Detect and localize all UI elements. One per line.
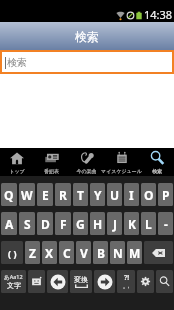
staticText: H [93, 216, 103, 232]
button[interactable]: G [73, 212, 88, 235]
button[interactable] [137, 270, 154, 293]
button[interactable]: ( ) [1, 241, 23, 264]
staticText: 。, [123, 283, 130, 290]
staticText: Z [29, 245, 36, 261]
button[interactable]: T [73, 183, 88, 206]
button[interactable]: Search [139, 148, 174, 176]
button[interactable]: J [107, 212, 122, 235]
staticText: P [162, 187, 170, 203]
button[interactable]: Top [0, 148, 34, 176]
staticText: N [113, 245, 123, 261]
button[interactable]: O [141, 183, 156, 206]
staticText: F [60, 216, 67, 232]
button[interactable]: K [124, 212, 139, 235]
button[interactable]: L [141, 212, 156, 235]
button[interactable]: P [158, 183, 173, 206]
staticText: 検索 [7, 56, 27, 69]
staticText: O [144, 187, 154, 203]
button[interactable] [144, 241, 173, 264]
button[interactable]: Q [1, 183, 17, 206]
staticText: 今の楽曲 [76, 168, 97, 174]
button[interactable]: Now playing [69, 148, 104, 176]
staticText: 検索 [152, 168, 162, 174]
button[interactable] [94, 270, 115, 293]
button[interactable]: H [90, 212, 105, 235]
staticText: トップ [9, 168, 25, 174]
button[interactable]: D [37, 212, 53, 235]
staticText: U [110, 187, 120, 203]
staticText: S [24, 216, 31, 232]
button[interactable] [28, 270, 45, 293]
button[interactable]: W [19, 183, 35, 206]
staticText: Y [94, 187, 102, 203]
staticText: ( ) [8, 247, 17, 259]
staticText: W [21, 187, 33, 203]
staticText: L [145, 216, 152, 232]
button[interactable]: M [127, 241, 142, 264]
staticText: G [76, 216, 85, 232]
staticText: あAa12 [4, 273, 23, 281]
button[interactable]: あAa12 [1, 270, 26, 293]
staticText: D [41, 216, 50, 232]
button[interactable]: R [55, 183, 71, 206]
staticText: B [97, 245, 105, 261]
staticText: T [77, 187, 84, 203]
staticText: K [128, 216, 136, 232]
button[interactable]: B [93, 241, 108, 264]
button[interactable]: E [37, 183, 53, 206]
button[interactable] [156, 270, 173, 293]
staticText: X [45, 245, 54, 261]
staticText: ?! [124, 273, 130, 283]
button[interactable]: 検索 [2, 52, 172, 72]
staticText: R [59, 187, 67, 203]
staticText: C [63, 245, 71, 261]
staticText: V [80, 245, 88, 261]
staticText: マイスケジュール [101, 168, 142, 174]
button[interactable]: ?! [117, 270, 135, 293]
button[interactable]: N [110, 241, 125, 264]
staticText: I [129, 187, 134, 203]
button[interactable]: A [1, 212, 17, 235]
staticText: - [164, 216, 168, 232]
staticText: M [129, 245, 141, 261]
staticText: Q [4, 187, 14, 203]
button[interactable]: Y [90, 183, 105, 206]
button[interactable]: S [19, 212, 35, 235]
staticText: A [5, 216, 14, 232]
button[interactable]: X [42, 241, 57, 264]
staticText: 14:38 [144, 7, 173, 22]
button[interactable]: F [55, 212, 71, 235]
staticText: 文字 [7, 281, 21, 290]
staticText: 番組表 [44, 168, 59, 174]
button[interactable]: Program guide [34, 148, 69, 176]
button[interactable]: C [59, 241, 74, 264]
button[interactable]: 変換 [70, 270, 92, 293]
button[interactable]: My schedule [104, 148, 139, 176]
button[interactable]: V [76, 241, 91, 264]
button[interactable]: I [124, 183, 139, 206]
staticText: J [113, 216, 117, 232]
button[interactable]: Z [25, 241, 40, 264]
staticText: 変換 [74, 275, 88, 284]
staticText: E [42, 187, 49, 203]
button[interactable]: U [107, 183, 122, 206]
button[interactable]: - [158, 212, 173, 235]
staticText: 検索 [75, 29, 99, 44]
button[interactable] [47, 270, 68, 293]
